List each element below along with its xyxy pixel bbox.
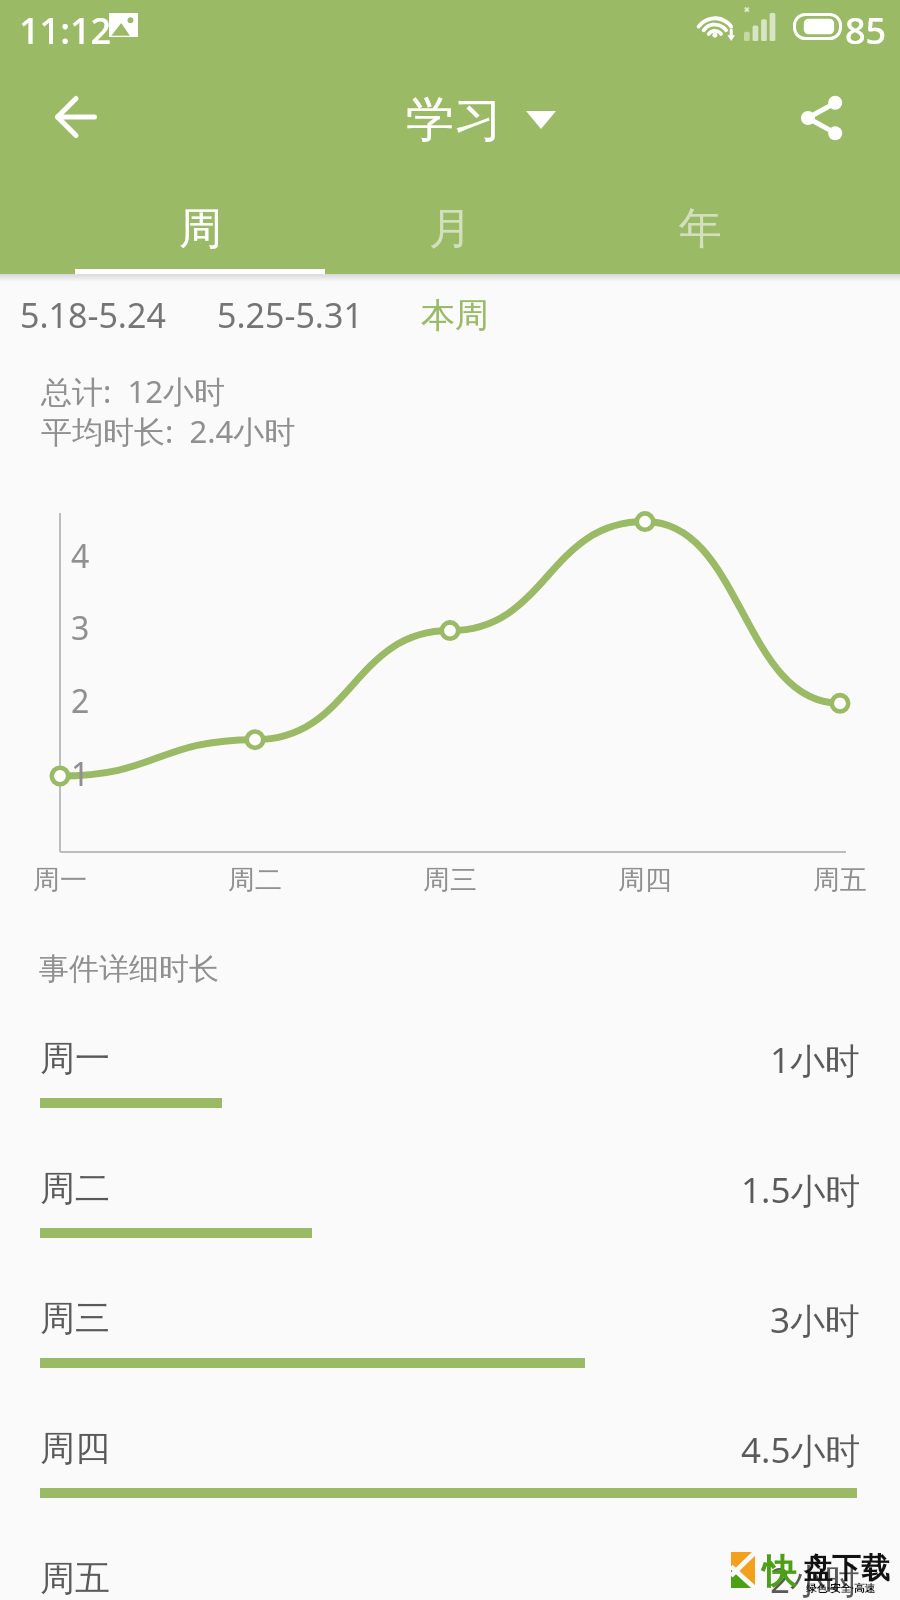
staticText: 快: [762, 1550, 796, 1593]
staticText: 5.25-5.31: [217, 292, 363, 338]
button[interactable]: 周三: [0, 1270, 900, 1400]
staticText: 周二: [40, 1166, 110, 1210]
button[interactable]: 5.25-5.31: [217, 286, 363, 344]
staticText: 学习: [406, 90, 502, 150]
staticText: 周一: [40, 1036, 110, 1080]
staticText: 3小时: [770, 1296, 861, 1344]
staticText: 1.5小时: [741, 1166, 861, 1214]
button[interactable]: 5.18-5.24: [20, 286, 166, 344]
staticText: 周四: [40, 1426, 110, 1470]
staticText: 年: [679, 202, 722, 256]
staticText: 事件详细时长: [39, 950, 219, 988]
button[interactable]: 周二: [0, 1140, 900, 1270]
staticText: 2: [71, 679, 90, 723]
staticText: 盘下载: [803, 1550, 890, 1587]
staticText: 周三: [40, 1296, 110, 1340]
staticText: 本周: [421, 294, 489, 337]
staticText: 4: [71, 534, 90, 578]
staticText: 85: [845, 6, 887, 55]
staticText: 周五: [40, 1556, 110, 1600]
staticText: 周一: [33, 863, 87, 897]
staticText: 4.5小时: [741, 1426, 861, 1474]
button[interactable]: 周五: [0, 1530, 900, 1600]
button[interactable]: 学习: [406, 90, 556, 150]
staticText: 2小时: [770, 1556, 861, 1600]
staticText: 周三: [423, 863, 477, 897]
button[interactable]: 周: [75, 184, 325, 274]
staticText: 1: [71, 752, 90, 796]
staticText: 绿色·安全·高速: [806, 1581, 875, 1595]
staticText: 3: [71, 606, 90, 650]
staticText: 周五: [813, 863, 867, 897]
button[interactable]: 周一: [0, 1010, 900, 1140]
staticText: 周四: [618, 863, 672, 897]
staticText: 总计: 12小时: [41, 370, 225, 412]
staticText: 11:12: [19, 6, 112, 55]
button[interactable]: Back: [40, 81, 112, 153]
staticText: 5.18-5.24: [20, 292, 166, 338]
staticText: 月: [429, 202, 472, 256]
button[interactable]: Share: [786, 82, 858, 154]
button[interactable]: 月: [325, 184, 575, 274]
staticText: 周二: [228, 863, 282, 897]
button[interactable]: 年: [575, 184, 825, 274]
button[interactable]: 周四: [0, 1400, 900, 1530]
staticText: 1小时: [770, 1036, 861, 1084]
button[interactable]: 本周: [421, 288, 489, 343]
staticText: 平均时长: 2.4小时: [41, 410, 296, 452]
staticText: 周: [179, 202, 222, 256]
